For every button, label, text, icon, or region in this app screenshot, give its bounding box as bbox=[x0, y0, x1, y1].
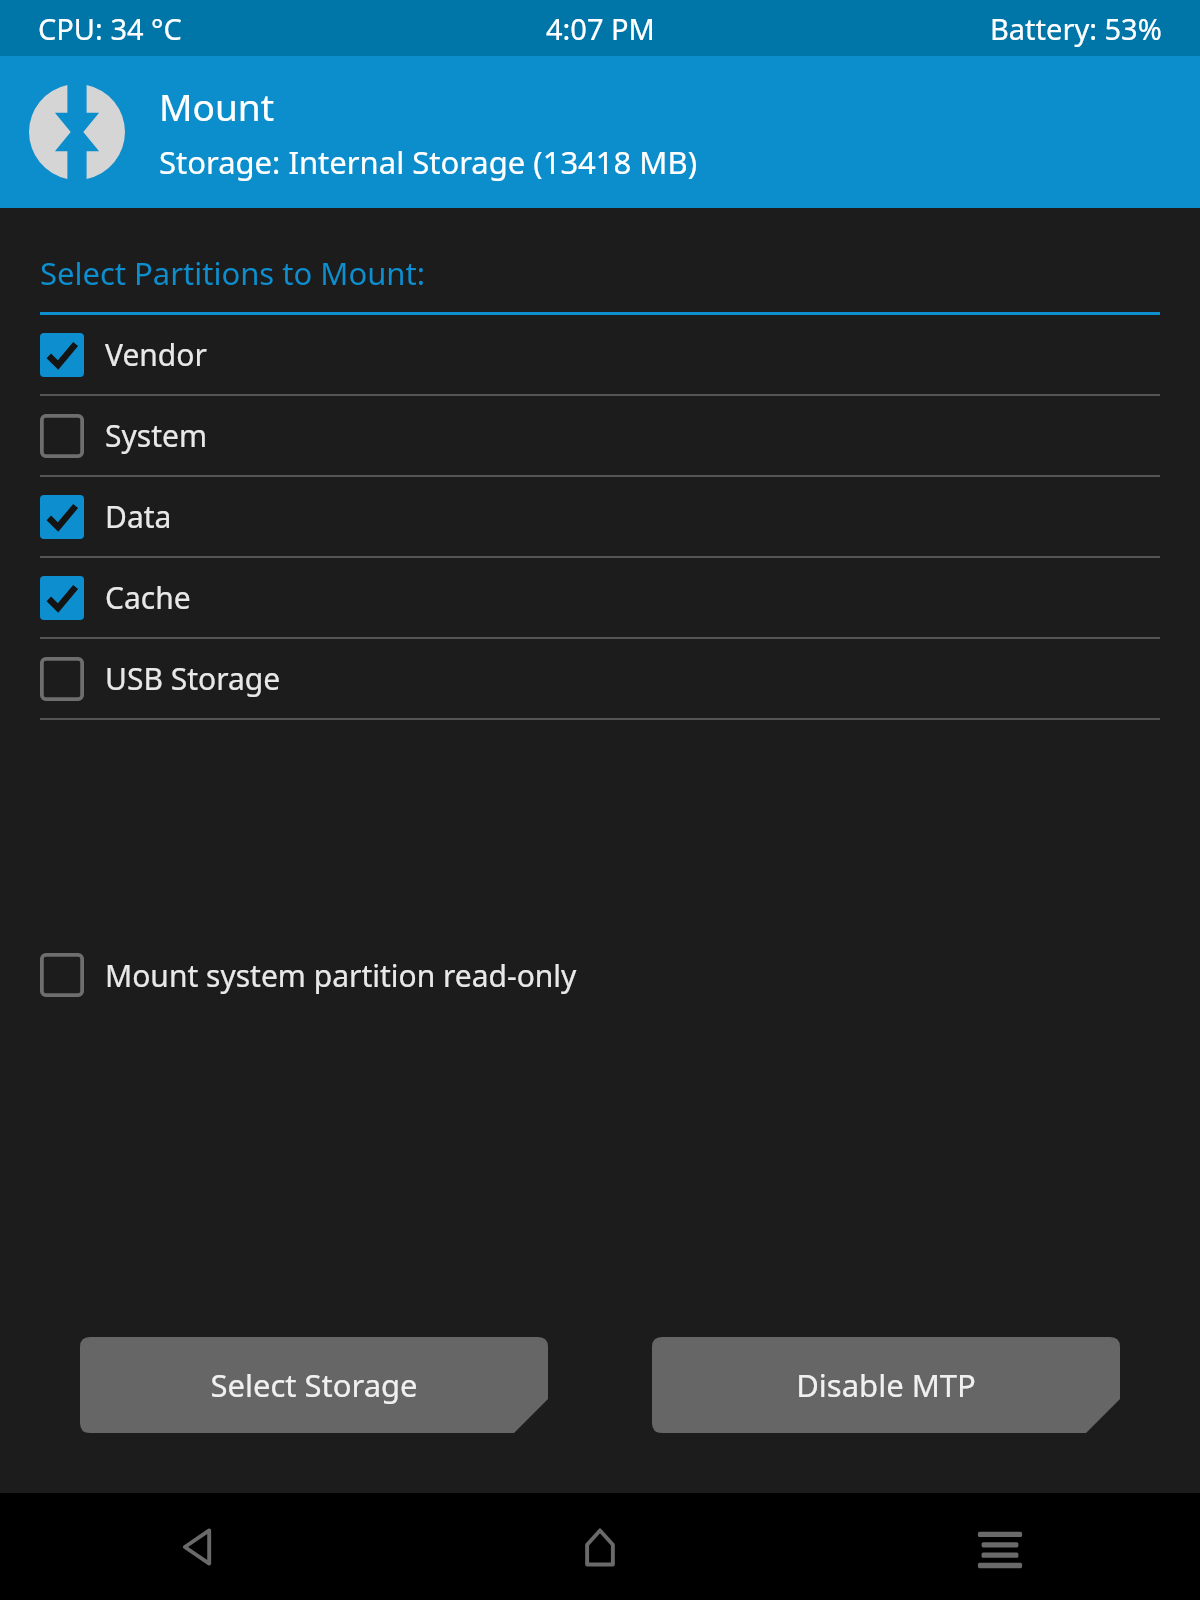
staticText: Cache bbox=[105, 577, 191, 618]
staticText: Battery: 53% bbox=[990, 9, 1162, 48]
staticText: USB Storage bbox=[105, 658, 281, 699]
button[interactable]: Vendor bbox=[0, 315, 1200, 394]
staticText: Vendor bbox=[105, 334, 207, 375]
button[interactable]: USB Storage bbox=[0, 639, 1200, 718]
staticText: Select Partitions to Mount: bbox=[40, 252, 425, 294]
button[interactable]: Disable MTP bbox=[652, 1337, 1120, 1433]
staticText: Storage: Internal Storage (13418 MB) bbox=[159, 141, 697, 183]
staticText: Disable MTP bbox=[796, 1364, 976, 1406]
staticText: CPU: 34 °C bbox=[38, 9, 182, 48]
staticText: Mount bbox=[159, 81, 275, 131]
staticText: 4:07 PM bbox=[546, 9, 655, 48]
button[interactable]: Data bbox=[0, 477, 1200, 556]
button[interactable]: Back bbox=[0, 1493, 400, 1600]
staticText: System bbox=[105, 415, 207, 456]
button[interactable]: Menu bbox=[800, 1493, 1200, 1600]
button[interactable]: Cache bbox=[0, 558, 1200, 637]
staticText: Mount system partition read-only bbox=[105, 955, 577, 996]
staticText: Select Storage bbox=[210, 1364, 418, 1406]
staticText: Data bbox=[105, 496, 172, 537]
button[interactable]: Home bbox=[400, 1493, 800, 1600]
button[interactable]: Mount system partition read-only bbox=[0, 935, 1200, 1015]
button[interactable]: Select Storage bbox=[80, 1337, 548, 1433]
button[interactable]: System bbox=[0, 396, 1200, 475]
